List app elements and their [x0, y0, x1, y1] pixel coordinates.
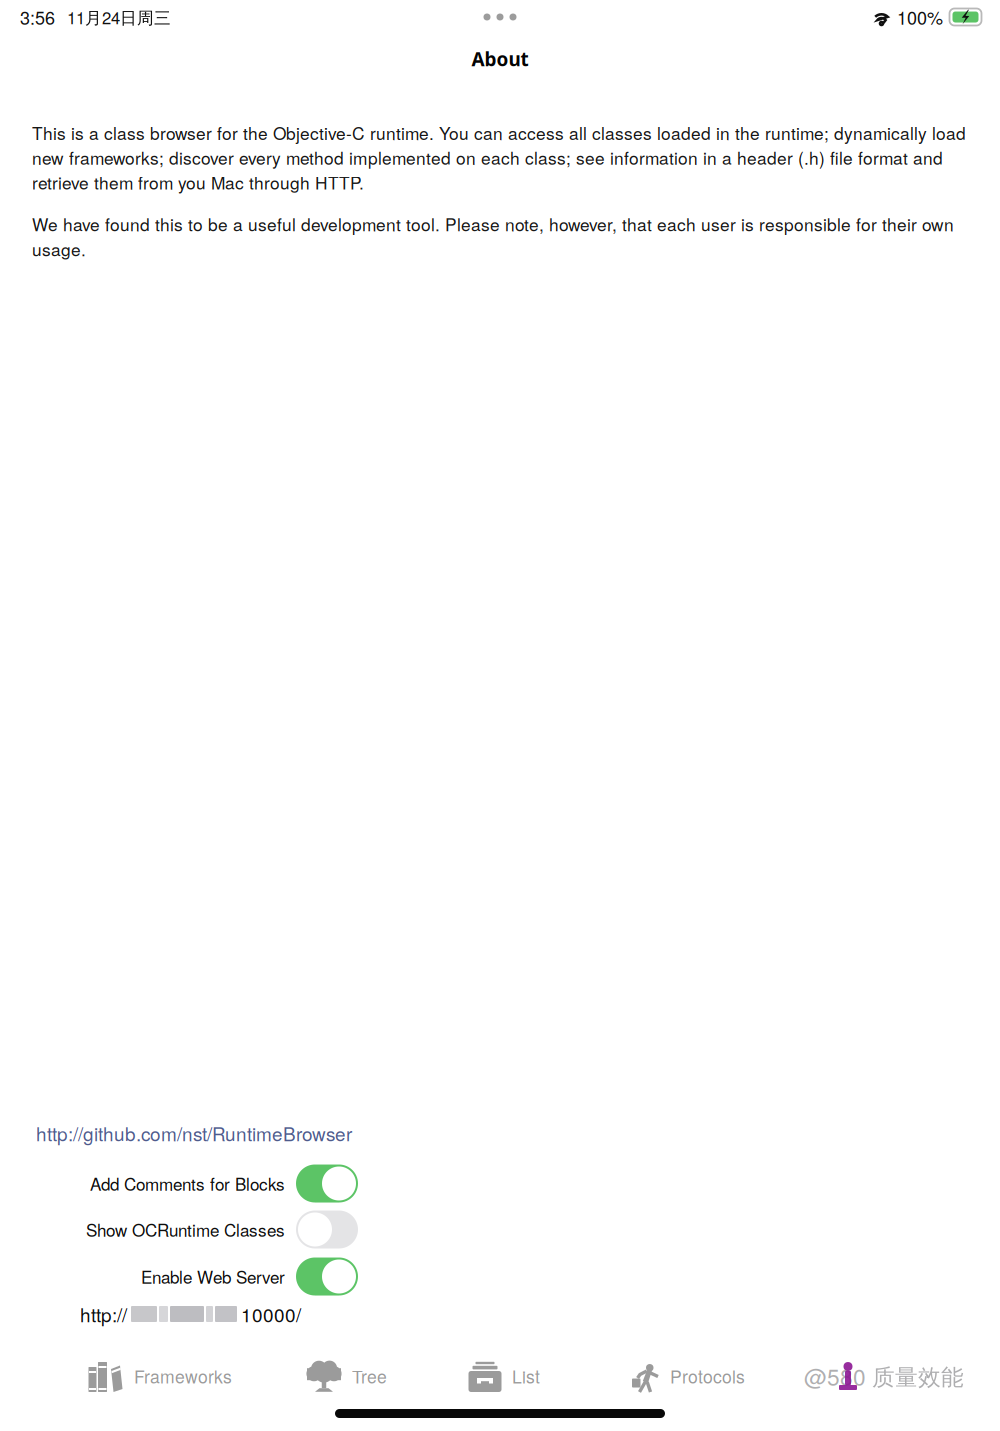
staticText: This is a class browser for the Objectiv… [32, 120, 966, 194]
staticText: 10000/ [241, 1300, 301, 1327]
staticText: @580 质量效能 [804, 1360, 964, 1392]
button[interactable]: Show OCRuntime Classes [0, 1206, 1000, 1253]
staticText: Enable Web Server [141, 1264, 285, 1289]
button[interactable]: Frameworks [80, 1349, 240, 1403]
staticText: About [471, 46, 528, 72]
button[interactable]: http://github.com/nst/RuntimeBrowser [36, 1122, 352, 1144]
staticText: Tree [352, 1363, 387, 1389]
staticText: Show OCRuntime Classes [86, 1217, 285, 1242]
staticText: Frameworks [134, 1363, 232, 1389]
button[interactable]: List [460, 1349, 548, 1403]
button[interactable]: Add Comments for Blocks [0, 1160, 1000, 1207]
button[interactable]: Enable Web Server [0, 1253, 1000, 1300]
staticText: 3:56 [20, 4, 55, 30]
button[interactable]: Protocols [622, 1349, 753, 1403]
staticText: List [512, 1363, 540, 1389]
button[interactable]: Tree [298, 1349, 395, 1403]
staticText: 11月24日周三 [67, 5, 171, 29]
staticText: We have found this to be a useful develo… [32, 211, 954, 261]
staticText: Protocols [670, 1363, 745, 1389]
staticText: 100% [897, 4, 943, 30]
staticText: http:// [80, 1300, 127, 1327]
staticText: Add Comments for Blocks [90, 1171, 285, 1196]
staticText: http://github.com/nst/RuntimeBrowser [36, 1119, 352, 1146]
